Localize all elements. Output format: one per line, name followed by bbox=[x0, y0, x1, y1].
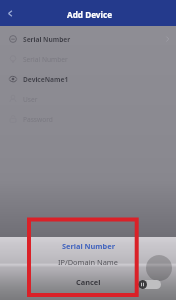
staticText: User bbox=[23, 95, 38, 104]
staticText: Cancel bbox=[76, 277, 101, 287]
button[interactable]: Cancel bbox=[0, 273, 176, 291]
button[interactable]: DeviceName1 bbox=[0, 69, 176, 89]
staticText: DeviceName1 bbox=[23, 75, 69, 84]
button[interactable]: Back bbox=[1, 5, 17, 21]
button[interactable]: Serial Number bbox=[0, 237, 176, 255]
staticText: Serial Number bbox=[23, 55, 68, 64]
staticText: Password bbox=[23, 115, 53, 124]
staticText: Serial Number bbox=[62, 241, 115, 251]
button[interactable]: Assistive touch bbox=[146, 255, 172, 281]
staticText: Serial Number bbox=[23, 35, 71, 44]
staticText: IP/Domain Name bbox=[58, 257, 118, 267]
button[interactable]: Serial Number bbox=[0, 29, 176, 49]
staticText: Add Device bbox=[67, 9, 113, 20]
button[interactable]: IP/Domain Name bbox=[0, 254, 176, 270]
button[interactable]: Pause recording bbox=[138, 280, 161, 289]
